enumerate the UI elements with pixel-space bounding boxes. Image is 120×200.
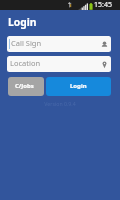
staticText: Location bbox=[10, 58, 41, 68]
other: Location bbox=[101, 60, 108, 69]
staticText: 15:45 bbox=[94, 0, 112, 10]
button[interactable]: Location bbox=[7, 56, 111, 72]
other: User bbox=[101, 40, 108, 49]
staticText: C/Jobs bbox=[15, 82, 34, 90]
button[interactable]: Call Sign bbox=[7, 36, 111, 52]
staticText: Call Sign bbox=[11, 38, 42, 48]
button[interactable]: Login bbox=[46, 77, 111, 96]
staticText: Login bbox=[70, 82, 87, 90]
button[interactable]: C/Jobs bbox=[8, 77, 44, 96]
staticText: Login bbox=[8, 15, 37, 29]
